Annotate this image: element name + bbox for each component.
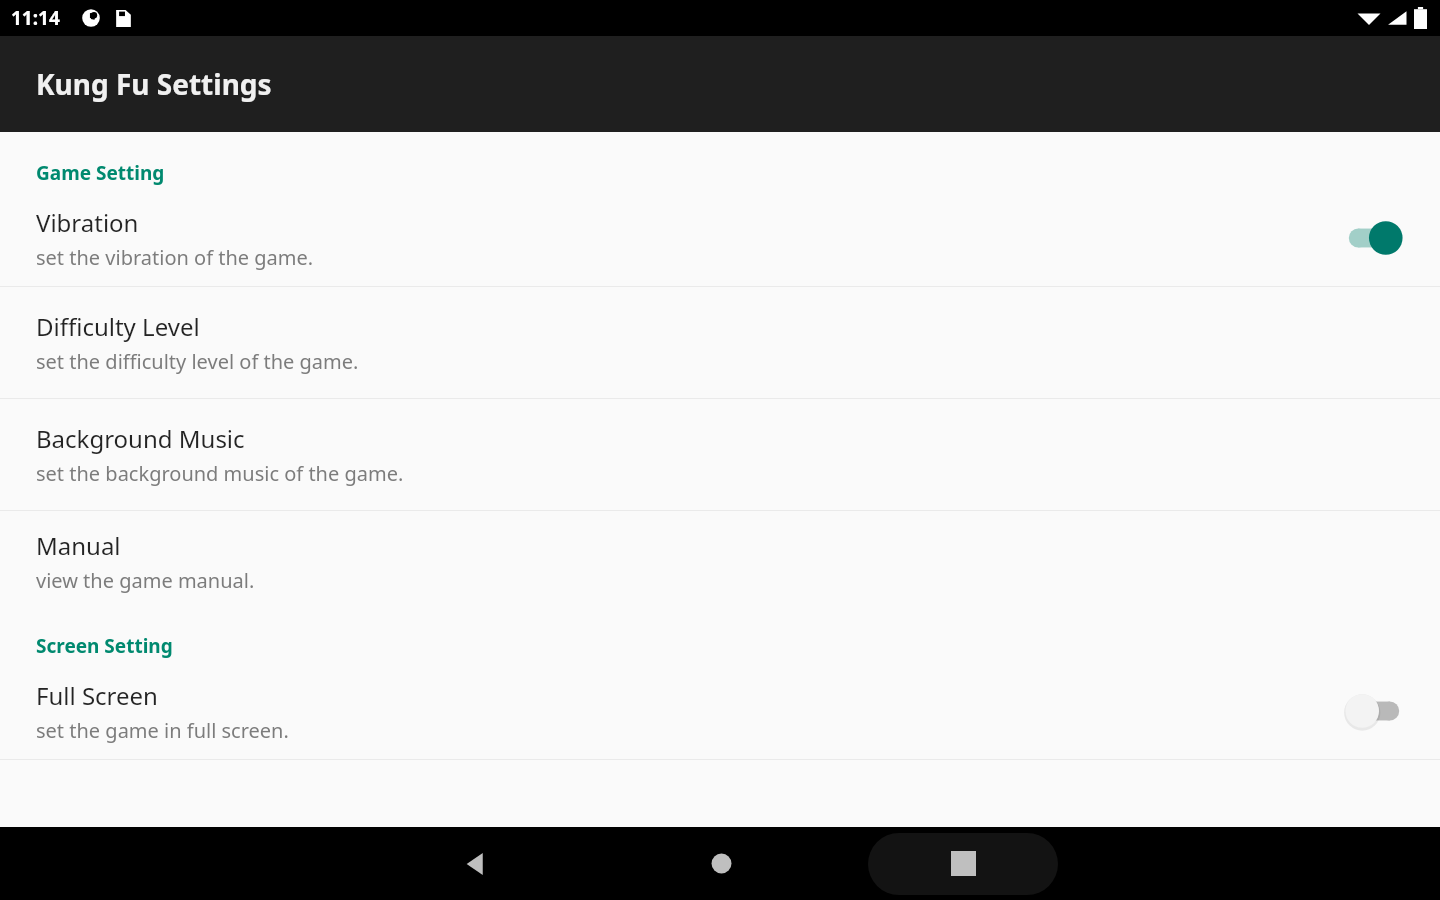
button[interactable]: Back — [428, 827, 524, 900]
button[interactable]: Background Music — [0, 399, 1440, 510]
staticText: set the game in full screen. — [36, 717, 289, 744]
staticText: Background Music — [36, 422, 245, 455]
staticText: set the difficulty level of the game. — [36, 348, 359, 375]
button[interactable]: Home — [673, 827, 769, 900]
button[interactable]: Recent apps — [868, 827, 1058, 900]
staticText: Vibration — [36, 206, 139, 239]
button[interactable]: Toggle Vibration — [1344, 217, 1404, 259]
staticText: view the game manual. — [36, 567, 255, 594]
staticText: Kung Fu Settings — [36, 65, 272, 103]
button[interactable]: Toggle Full Screen — [1344, 690, 1404, 732]
staticText: Full Screen — [36, 679, 158, 712]
staticText: 11:14 — [11, 5, 60, 31]
staticText: set the vibration of the game. — [36, 244, 314, 271]
button[interactable]: Manual — [0, 511, 1440, 611]
staticText: set the background music of the game. — [36, 460, 404, 487]
staticText: Manual — [36, 529, 121, 562]
staticText: Difficulty Level — [36, 310, 200, 343]
button[interactable]: Full Screen — [0, 663, 1440, 759]
staticText: Game Setting — [36, 160, 165, 186]
staticText: Screen Setting — [36, 633, 173, 659]
button[interactable]: Vibration — [0, 190, 1440, 286]
button[interactable]: Difficulty Level — [0, 287, 1440, 398]
